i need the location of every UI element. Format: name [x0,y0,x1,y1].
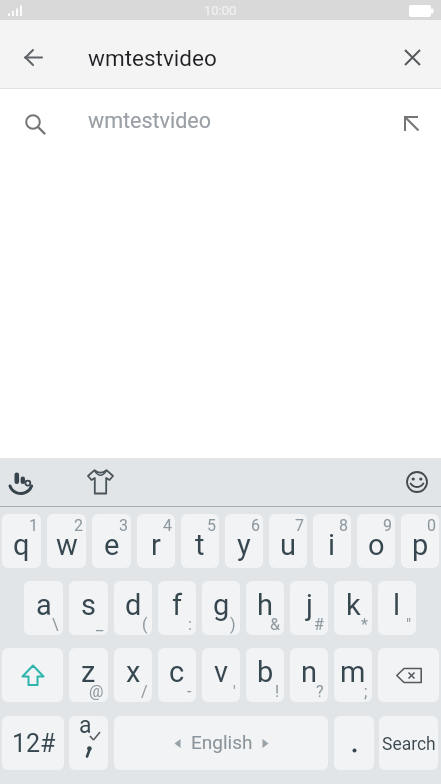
button[interactable]: a [69,716,108,770]
staticText: a [79,716,92,739]
staticText: w [56,528,78,562]
staticText: r [151,528,161,562]
staticText: u [280,528,296,562]
button[interactable]: w [47,514,86,568]
staticText: c [169,655,185,689]
button[interactable]: g [202,581,240,635]
button[interactable] [2,461,44,503]
button[interactable]: 12# [2,716,64,770]
staticText: z [81,655,96,689]
staticText: f [172,588,183,622]
button[interactable]: q [2,514,41,568]
button[interactable]: u [269,514,307,568]
button[interactable]: t [181,514,219,568]
staticText: : [188,615,192,634]
staticText: # [314,615,324,634]
staticText: ; [364,682,368,701]
staticText: p [412,528,429,562]
staticText: ! [275,682,280,701]
button[interactable]: m [334,648,372,702]
staticText: m [340,655,366,689]
button[interactable]: f [158,581,196,635]
button[interactable]: k [334,581,372,635]
staticText: wmtestvideo [88,45,217,71]
button[interactable]: h [246,581,284,635]
staticText: 12# [12,729,56,758]
staticText: b [257,655,274,689]
staticText: \ [52,615,59,634]
button[interactable]: z [69,648,108,702]
button[interactable] [397,462,437,502]
staticText: Search [382,734,436,755]
button[interactable] [378,648,439,702]
staticText: * [361,615,368,634]
staticText: wmtestvideo [88,108,212,133]
button[interactable]: wmtestvideo [0,89,441,159]
staticText: e [104,528,120,562]
staticText: ) [230,615,236,634]
button[interactable]: d [114,581,152,635]
staticText: 0 [427,516,436,535]
staticText: 7 [295,516,304,535]
staticText: a [36,588,52,622]
button[interactable]: j [290,581,328,635]
button[interactable]: l [378,581,416,635]
staticText: j [306,588,313,622]
button[interactable]: e [92,514,131,568]
staticText: 4 [163,516,172,535]
staticText: - [187,682,192,701]
button[interactable]: i [313,514,351,568]
staticText: 1 [29,516,38,535]
staticText: q [13,528,30,562]
staticText: 5 [207,516,216,535]
button[interactable]: r [137,514,175,568]
staticText: t [195,528,205,562]
button[interactable]: b [246,648,284,702]
staticText: n [301,655,318,689]
button[interactable]: p [401,514,439,568]
button[interactable]: wmtestvideo [66,20,366,88]
staticText: English [191,731,253,753]
button[interactable] [5,29,61,85]
staticText: 8 [339,516,348,535]
staticText: 9 [383,516,392,535]
button[interactable] [334,716,374,770]
button[interactable]: a [24,581,63,635]
staticText: 2 [74,516,83,535]
button[interactable]: v [202,648,240,702]
staticText: ' [233,682,236,701]
staticText: g [213,588,230,622]
staticText: v [214,655,229,689]
button[interactable] [2,648,63,702]
staticText: y [237,528,251,562]
staticText: h [257,588,273,622]
staticText: x [126,655,141,689]
button[interactable] [80,462,120,502]
staticText: i [328,528,336,562]
staticText: o [368,528,385,562]
staticText: _ [96,615,104,634]
staticText: 3 [119,516,128,535]
staticText: s [81,588,96,622]
button[interactable]: n [290,648,328,702]
button[interactable]: English [114,716,328,770]
staticText: @ [89,682,104,701]
staticText: 6 [251,516,260,535]
button[interactable]: y [225,514,263,568]
staticText: " [406,615,412,634]
staticText: d [125,588,142,622]
button[interactable]: s [69,581,108,635]
button[interactable]: x [114,648,152,702]
staticText: ( [142,615,148,634]
staticText: & [270,615,280,634]
staticText: l [393,588,401,622]
button[interactable]: o [357,514,395,568]
button[interactable] [384,29,440,85]
staticText: ? [316,682,324,701]
button[interactable]: Search [379,716,438,770]
staticText: 10:00 [204,3,237,18]
staticText: k [346,588,361,622]
staticText: / [141,682,148,701]
button[interactable]: c [158,648,196,702]
